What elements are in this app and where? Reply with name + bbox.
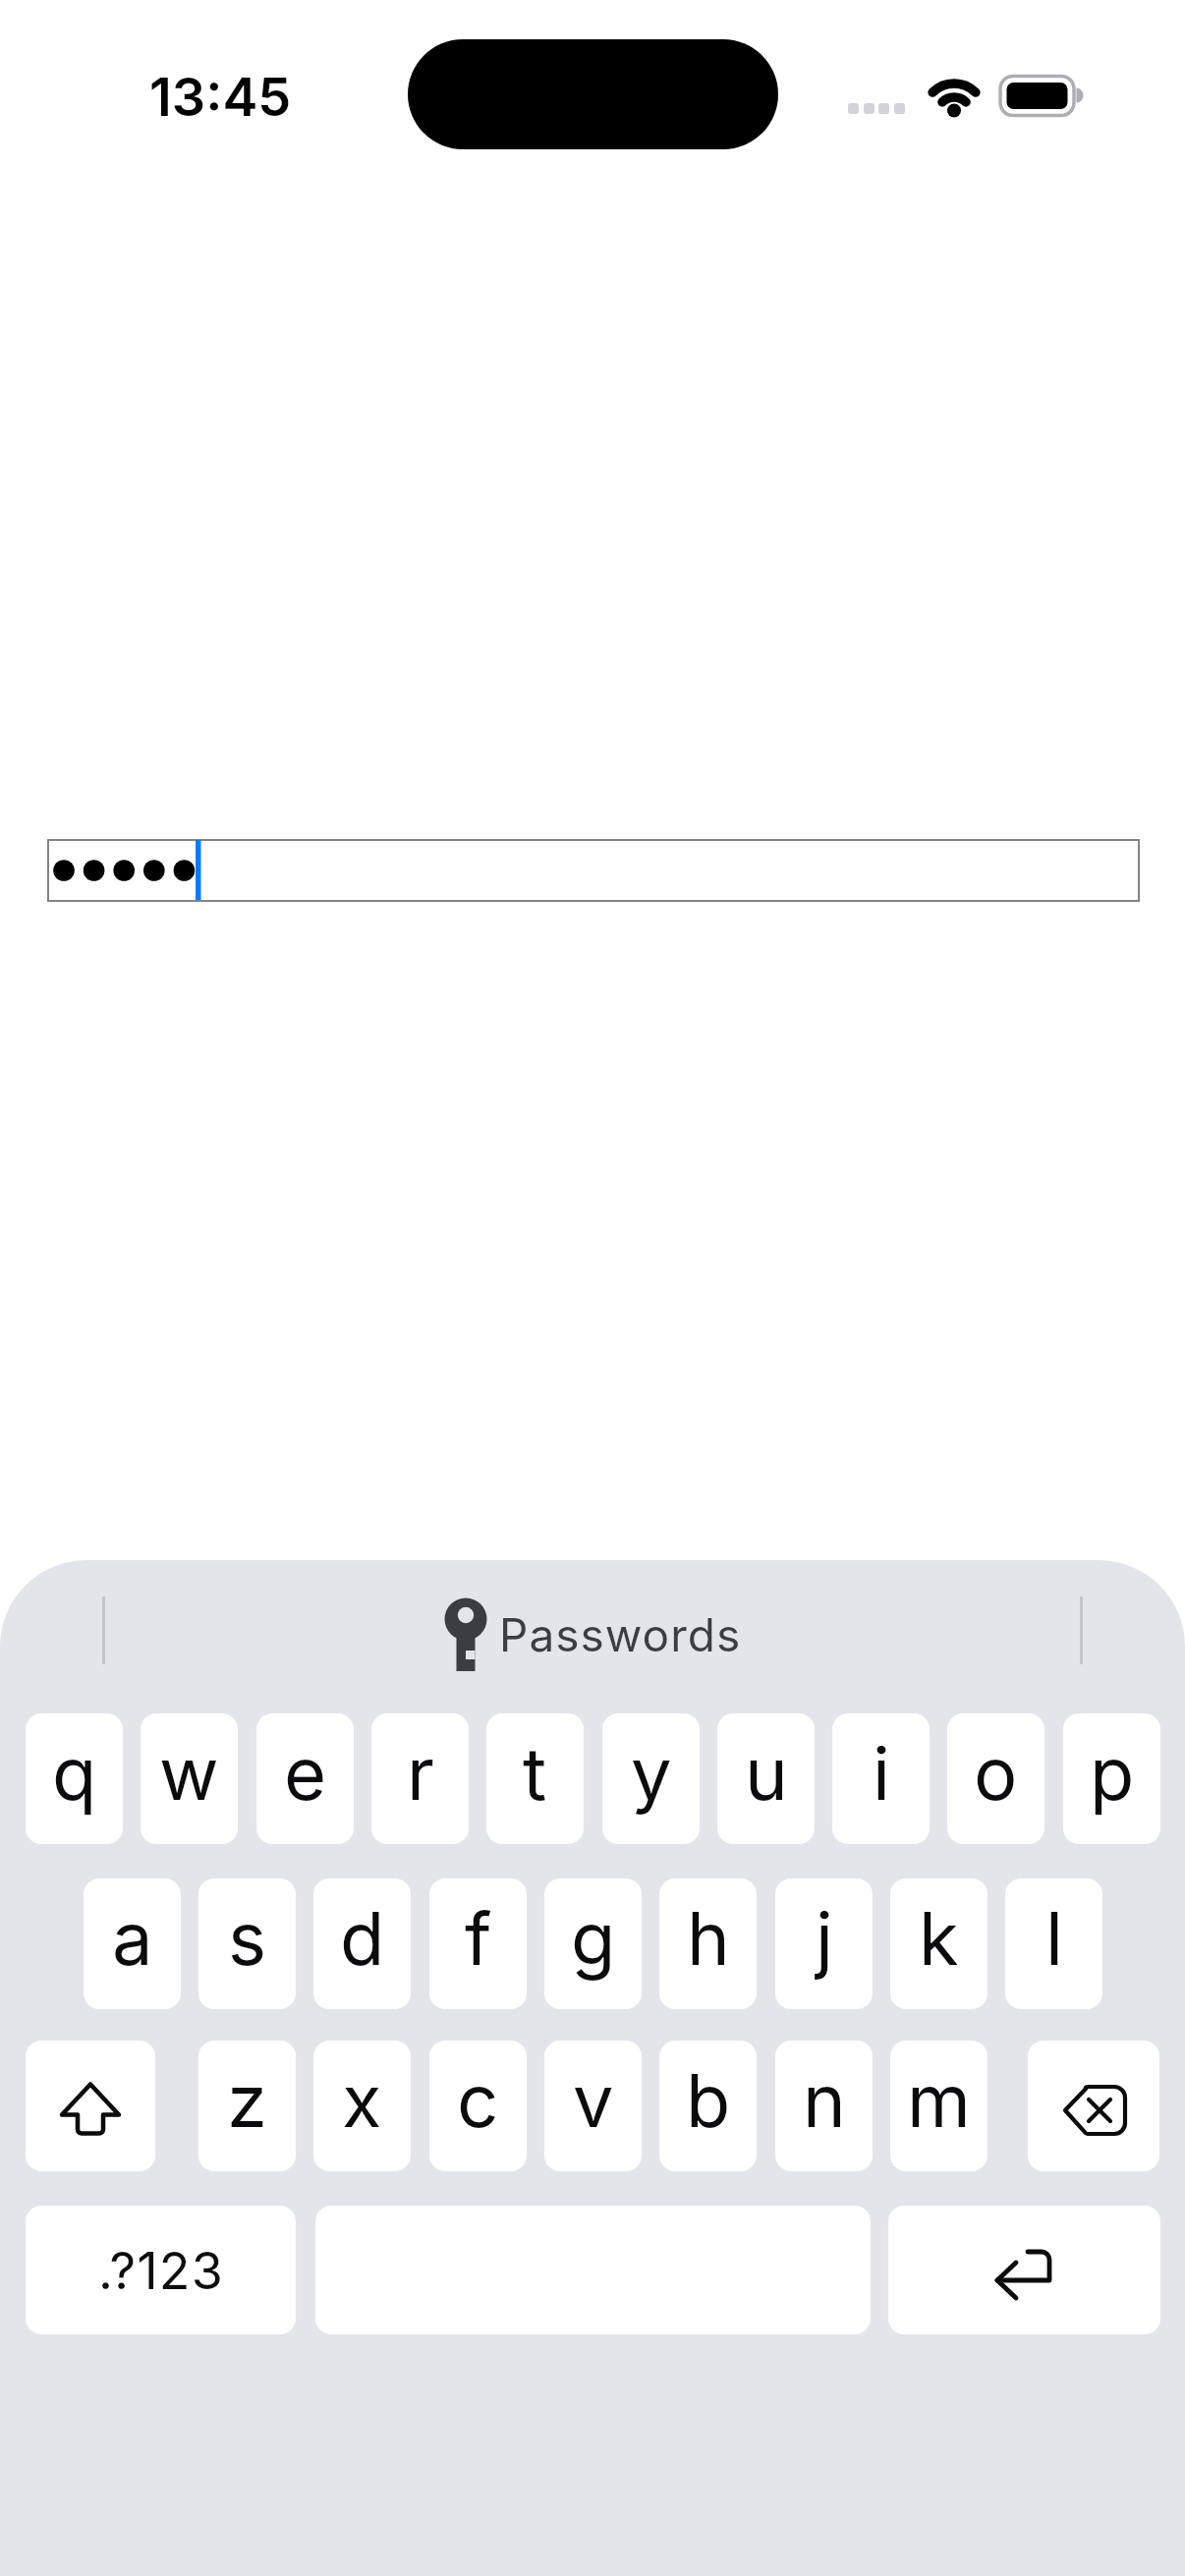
- button[interactable]: y: [602, 1713, 700, 1844]
- button[interactable]: i: [832, 1713, 930, 1844]
- staticText: x: [342, 2056, 382, 2145]
- staticText: h: [687, 1894, 730, 1983]
- staticText: o: [974, 1729, 1018, 1818]
- button[interactable]: g: [544, 1878, 642, 2009]
- staticText: b: [686, 2056, 731, 2145]
- staticText: f: [465, 1894, 492, 1983]
- button[interactable]: [26, 2041, 155, 2171]
- staticText: r: [407, 1729, 434, 1818]
- button[interactable]: x: [313, 2041, 411, 2171]
- staticText: s: [228, 1894, 267, 1983]
- button[interactable]: .?123: [26, 2206, 296, 2334]
- staticText: j: [816, 1894, 833, 1983]
- staticText: k: [919, 1894, 959, 1983]
- staticText: a: [112, 1894, 153, 1983]
- staticText: p: [1090, 1729, 1135, 1818]
- staticText: n: [803, 2056, 846, 2145]
- button[interactable]: Passwords: [440, 1590, 742, 1680]
- button[interactable]: p: [1063, 1713, 1160, 1844]
- staticText: d: [340, 1894, 385, 1983]
- staticText: e: [284, 1729, 327, 1818]
- staticText: y: [631, 1729, 672, 1818]
- button[interactable]: z: [198, 2041, 296, 2171]
- staticText: u: [745, 1729, 788, 1818]
- button[interactable]: d: [313, 1878, 411, 2009]
- staticText: .?123: [98, 2240, 224, 2302]
- button[interactable]: q: [26, 1713, 123, 1844]
- staticText: w: [159, 1729, 219, 1818]
- button[interactable]: [1028, 2041, 1159, 2171]
- button[interactable]: c: [429, 2041, 527, 2171]
- staticText: i: [873, 1729, 890, 1818]
- staticText: l: [1045, 1894, 1063, 1983]
- button[interactable]: e: [256, 1713, 354, 1844]
- button[interactable]: v: [544, 2041, 642, 2171]
- button[interactable]: t: [486, 1713, 584, 1844]
- button[interactable]: s: [198, 1878, 296, 2009]
- staticText: q: [52, 1729, 97, 1818]
- button[interactable]: l: [1005, 1878, 1102, 2009]
- button[interactable]: o: [947, 1713, 1044, 1844]
- staticText: g: [571, 1894, 616, 1983]
- button[interactable]: a: [84, 1878, 181, 2009]
- button[interactable]: b: [659, 2041, 757, 2171]
- staticText: v: [573, 2056, 614, 2145]
- button[interactable]: m: [890, 2041, 987, 2171]
- staticText: t: [523, 1729, 547, 1818]
- button[interactable]: f: [429, 1878, 527, 2009]
- button[interactable]: k: [890, 1878, 987, 2009]
- button[interactable]: [888, 2206, 1160, 2334]
- staticText: Passwords: [499, 1607, 742, 1662]
- button[interactable]: [47, 839, 1140, 902]
- button[interactable]: n: [775, 2041, 873, 2171]
- button[interactable]: w: [141, 1713, 238, 1844]
- button[interactable]: j: [775, 1878, 873, 2009]
- button[interactable]: r: [371, 1713, 469, 1844]
- button[interactable]: h: [659, 1878, 757, 2009]
- staticText: z: [227, 2056, 267, 2145]
- button[interactable]: u: [717, 1713, 815, 1844]
- staticText: c: [457, 2056, 499, 2145]
- staticText: m: [907, 2056, 971, 2145]
- staticText: 13:45: [149, 65, 292, 129]
